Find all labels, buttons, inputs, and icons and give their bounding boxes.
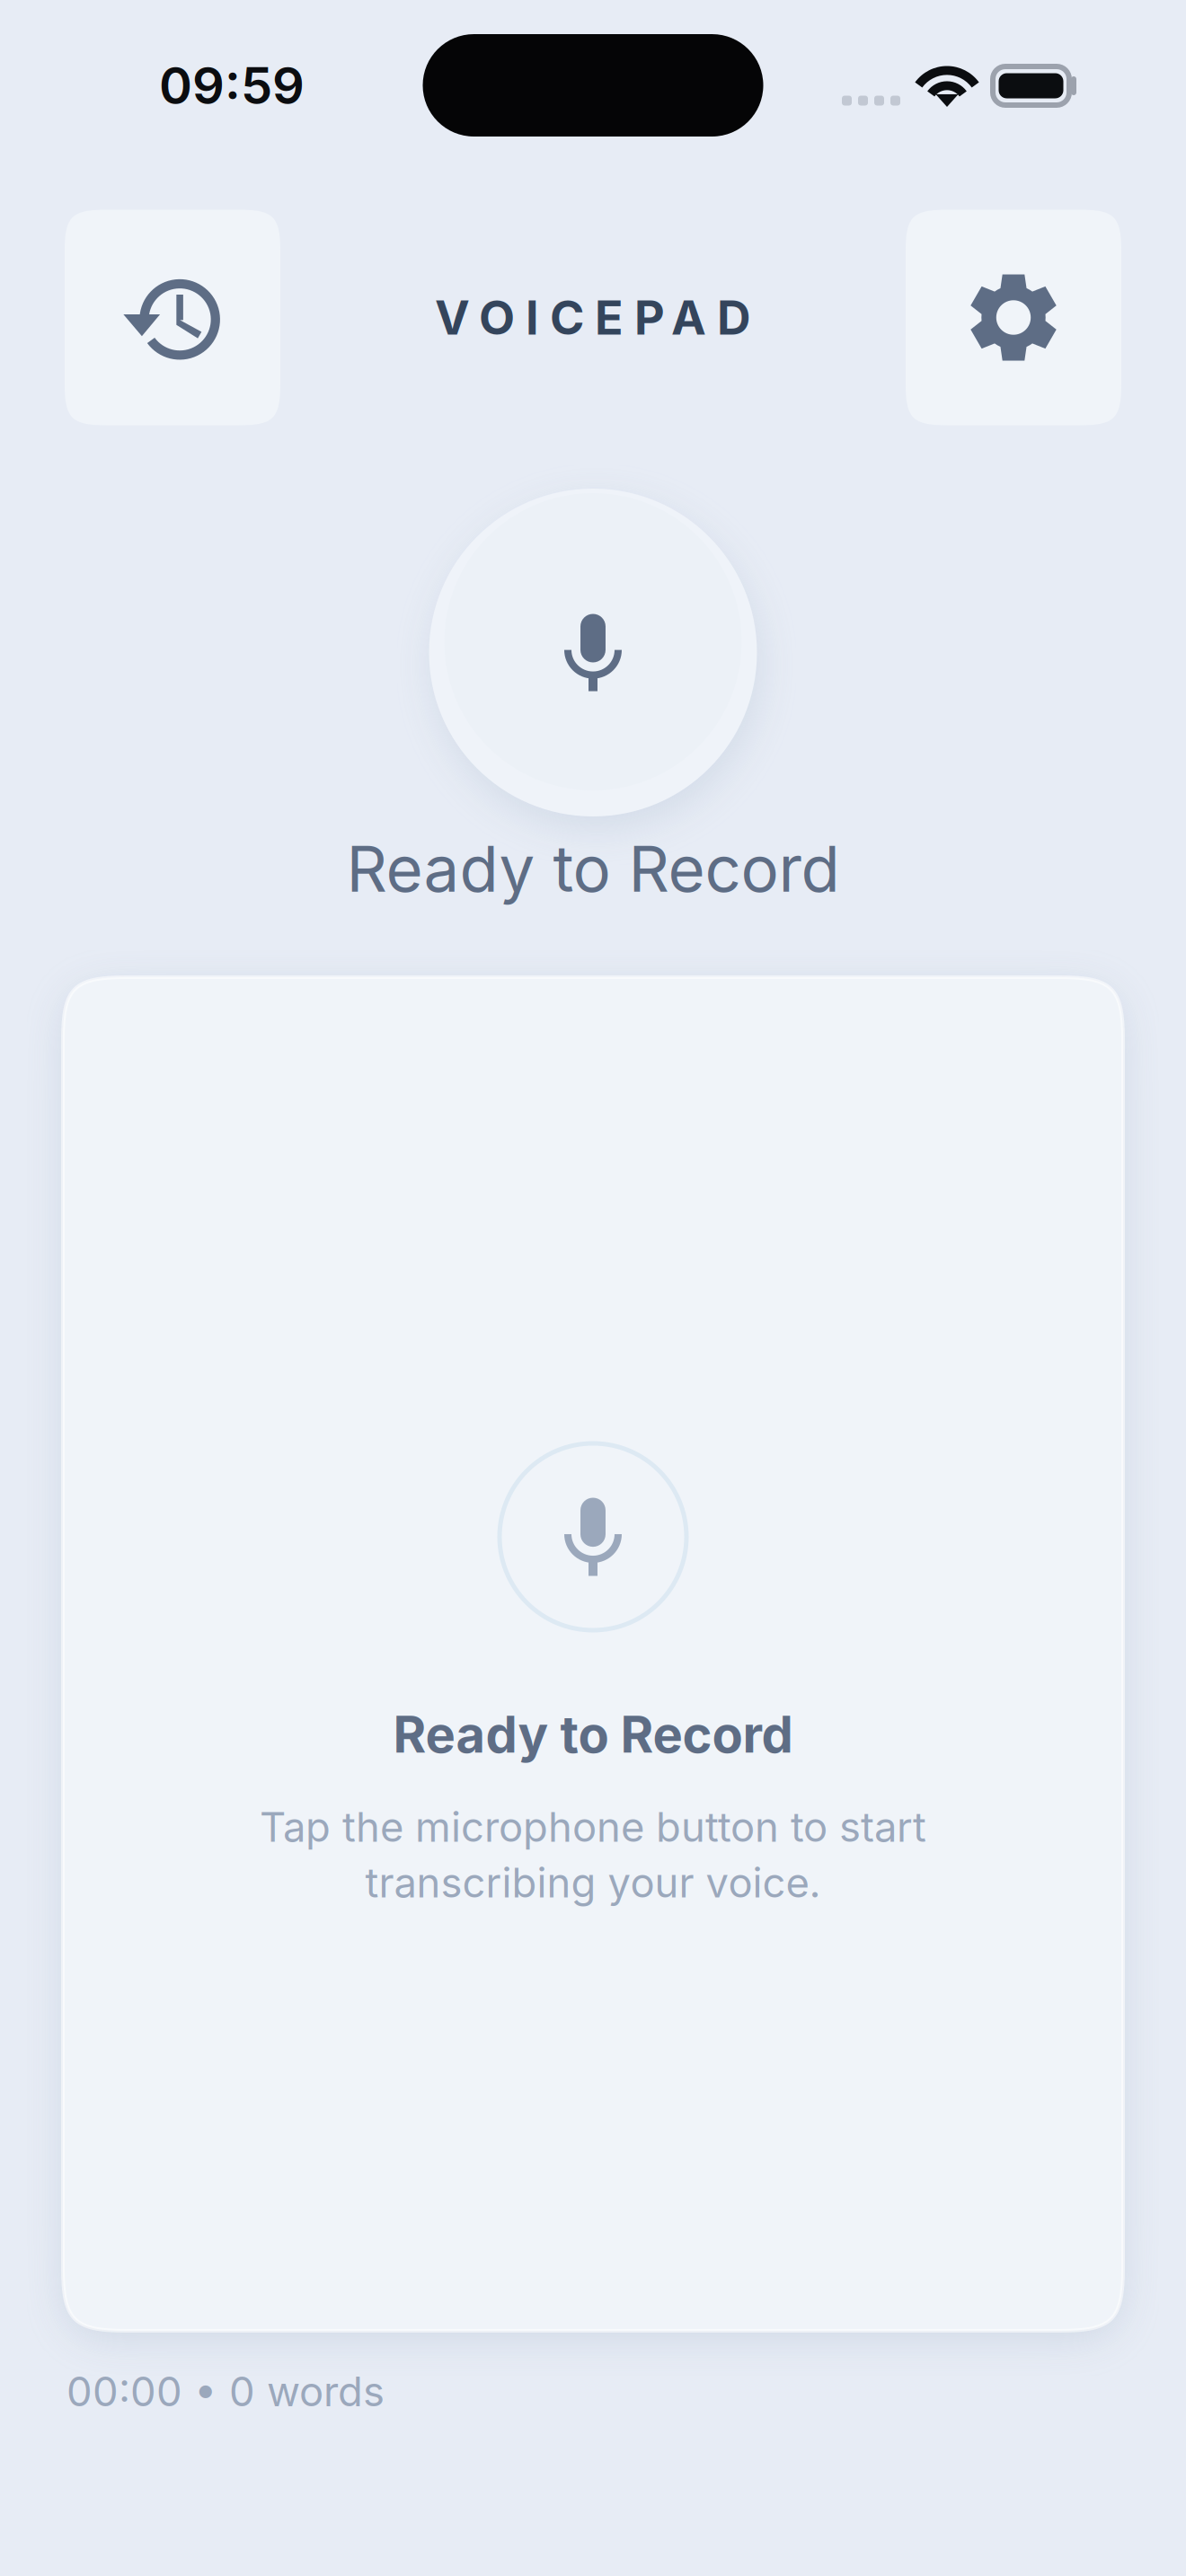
staticText: Ready to Record <box>346 830 840 907</box>
button[interactable]: Start recording <box>429 489 757 816</box>
button[interactable]: History <box>65 210 280 425</box>
staticText: Tap the microphone button to start <box>260 1802 926 1852</box>
staticText: 09:59 <box>159 55 305 116</box>
staticText: Ready to Record <box>393 1704 793 1765</box>
staticText: 00:00 • 0 words <box>66 2367 385 2416</box>
staticText: VOICEPAD <box>435 289 751 346</box>
button[interactable]: Settings <box>906 210 1121 425</box>
staticText: transcribing your voice. <box>365 1858 821 1907</box>
